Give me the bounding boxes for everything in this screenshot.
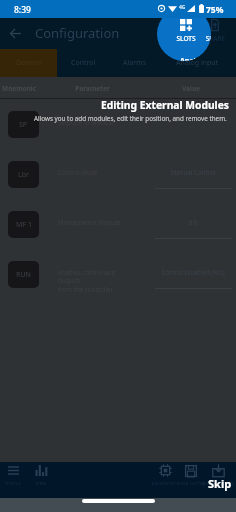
button[interactable]: restore config: [201, 463, 235, 487]
staticText: 75%: [206, 4, 224, 16]
button[interactable]: Analog input: [159, 49, 236, 77]
staticText: Editing External Modules: [0, 98, 229, 112]
staticText: Control: [71, 58, 96, 68]
staticText: Analog input: [180, 56, 211, 61]
staticText: save config: [174, 480, 208, 487]
staticText: Setpoint in Manual: [58, 118, 130, 126]
staticText: 4G: [179, 4, 186, 11]
staticText: 75%: [206, 4, 224, 16]
staticText: Allows you to add modules, edit their po…: [34, 114, 230, 123]
staticText: Analog input: [176, 58, 219, 68]
staticText: parameters: [148, 480, 182, 487]
staticText: Mnemonic: [2, 84, 56, 93]
button[interactable]: parameters: [148, 463, 182, 487]
staticText: Parameter: [56, 84, 129, 93]
button[interactable]: RUN: [0, 250, 236, 300]
button[interactable]: Lbr: [0, 150, 236, 200]
staticText: Skip: [208, 476, 232, 491]
button[interactable]: view: [24, 463, 58, 487]
button[interactable]: SHARE: [200, 19, 211, 43]
button[interactable]: save config: [174, 463, 208, 487]
button[interactable]: SLOTS: [169, 19, 201, 43]
button[interactable]: Skip: [208, 476, 232, 491]
staticText: MF 1: [16, 220, 32, 230]
button[interactable]: SP: [0, 100, 236, 150]
button[interactable]: MF 1: [0, 200, 236, 250]
button[interactable]: Back: [0, 18, 31, 49]
button[interactable]: SLOTS: [170, 19, 202, 43]
staticText: menus: [0, 480, 30, 487]
staticText: 8:39: [14, 4, 31, 16]
button[interactable]: Alarms: [109, 49, 159, 77]
staticText: SHARE: [199, 34, 231, 43]
staticText: Value: [146, 84, 236, 93]
staticText: SHARE: [200, 34, 211, 43]
staticText: Control Disabled (NO): [154, 268, 232, 276]
button[interactable]: SHARE: [199, 19, 231, 43]
staticText: [154, 118, 232, 126]
button[interactable]: Control: [57, 49, 109, 77]
staticText: Alarms: [123, 58, 146, 68]
staticText: Lbr: [18, 170, 30, 180]
staticText: SP: [19, 120, 28, 130]
staticText: Configuration: [35, 24, 120, 42]
staticText: restore config: [201, 480, 235, 487]
staticText: SLOTS: [170, 34, 202, 43]
staticText: 4G: [179, 4, 186, 11]
staticText: General: [16, 58, 42, 68]
button[interactable]: menus: [0, 463, 30, 487]
staticText: Manual Control: [154, 168, 232, 176]
staticText: 8:39: [14, 4, 31, 16]
staticText: SLOTS: [169, 34, 201, 43]
staticText: RUN: [16, 270, 32, 280]
